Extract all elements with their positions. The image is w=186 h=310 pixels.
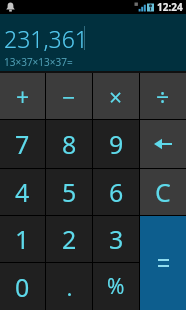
button[interactable]: 9 <box>93 120 139 168</box>
button[interactable]: 6 <box>93 169 139 215</box>
button[interactable]: 5 <box>46 169 92 215</box>
staticText: % <box>107 272 125 301</box>
button[interactable]: − <box>46 73 92 119</box>
staticText: − <box>62 81 76 112</box>
button[interactable]: Backspace <box>140 120 186 168</box>
button[interactable]: 8 <box>46 120 92 168</box>
button[interactable] <box>140 216 186 310</box>
button[interactable]: 0 <box>0 263 45 310</box>
staticText: 2 <box>62 222 77 256</box>
staticText: 1 <box>15 222 30 256</box>
button[interactable]: 2 <box>46 216 92 262</box>
staticText: 231,361 <box>4 23 88 54</box>
button[interactable]: + <box>0 73 45 119</box>
button[interactable]: ÷ <box>140 73 186 119</box>
button[interactable]: Decimal point <box>46 263 92 310</box>
button[interactable]: 7 <box>0 120 45 168</box>
staticText: 6 <box>109 175 124 209</box>
staticText: 4 <box>15 175 30 209</box>
button[interactable]: 1 <box>0 216 45 262</box>
staticText: × <box>109 81 123 112</box>
button[interactable]: × <box>93 73 139 119</box>
staticText: ÷ <box>156 81 170 112</box>
staticText: C <box>155 175 171 209</box>
button[interactable]: % <box>93 263 139 310</box>
staticText: 5 <box>62 175 77 209</box>
button[interactable]: C <box>140 169 186 215</box>
staticText: + <box>16 81 30 112</box>
button[interactable]: 4 <box>0 169 45 215</box>
staticText: 12:24 <box>157 0 183 14</box>
staticText: 0 <box>15 270 30 304</box>
staticText: 13×37×13×37= <box>4 55 73 69</box>
staticText: 8 <box>62 127 77 161</box>
staticText: 9 <box>109 127 124 161</box>
staticText: 7 <box>15 127 30 161</box>
staticText: 3 <box>109 222 124 256</box>
button[interactable]: 3 <box>93 216 139 262</box>
